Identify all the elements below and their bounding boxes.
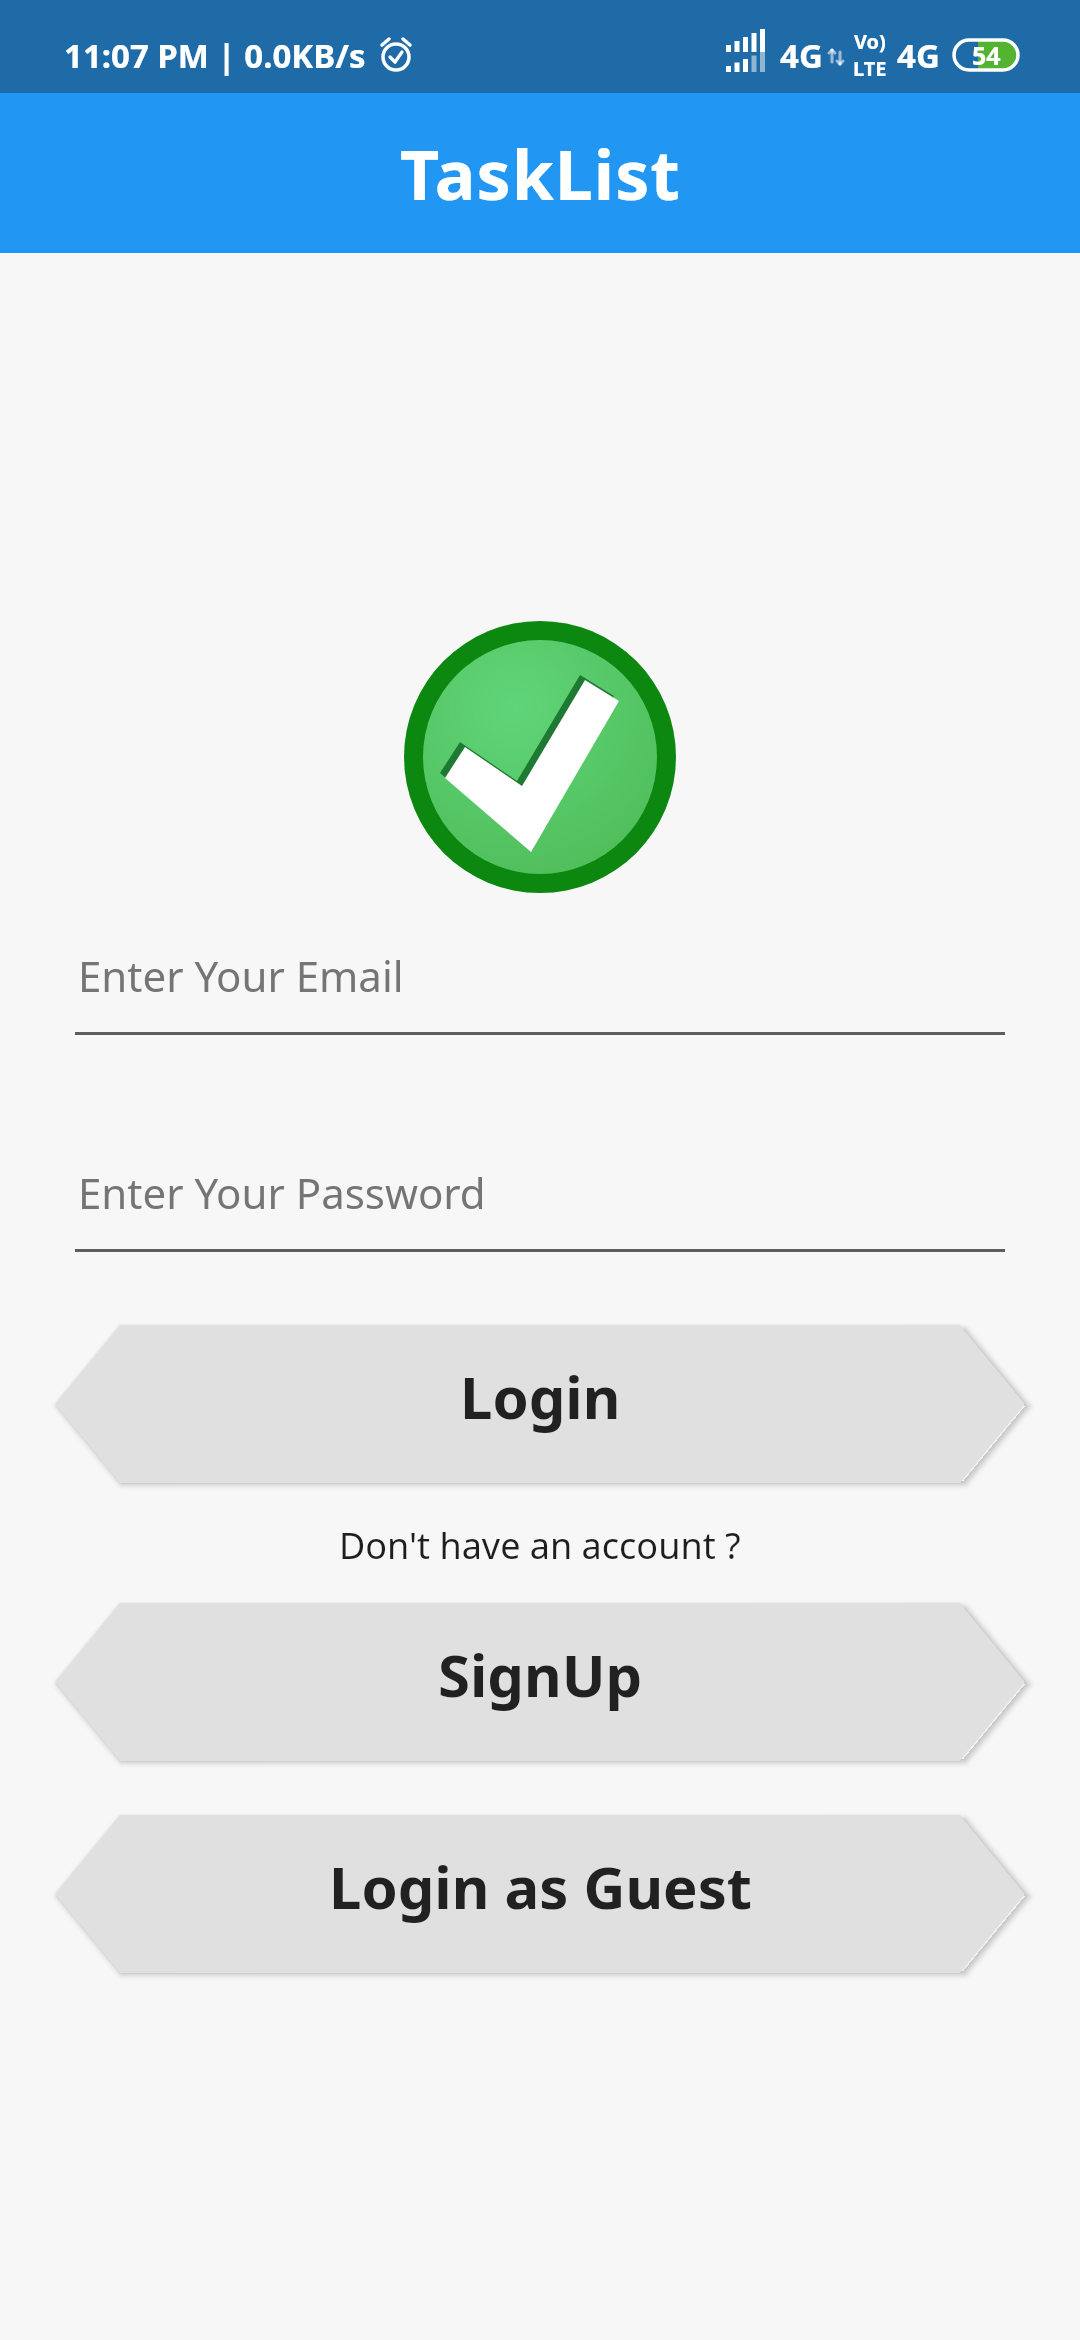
staticText: LTE: [853, 55, 887, 82]
staticText: TaskList: [400, 127, 681, 220]
button[interactable]: SignUp: [55, 1603, 1025, 1761]
button[interactable]: Login: [55, 1325, 1025, 1483]
staticText: SignUp: [438, 1635, 643, 1714]
staticText: Login as Guest: [329, 1847, 752, 1926]
staticText: 4G: [897, 33, 940, 78]
staticText: Enter Your Email: [78, 947, 404, 1004]
button[interactable]: Login as Guest: [55, 1815, 1025, 1973]
staticText: Login: [460, 1357, 621, 1436]
staticText: 11:07 PM | 0.0KB/s: [64, 33, 366, 78]
staticText: Don't have an account ?: [339, 1521, 741, 1570]
staticText: Vo): [854, 28, 886, 55]
staticText: 54: [972, 38, 1001, 72]
staticText: Enter Your Password: [78, 1164, 486, 1221]
staticText: 4G: [780, 33, 823, 78]
